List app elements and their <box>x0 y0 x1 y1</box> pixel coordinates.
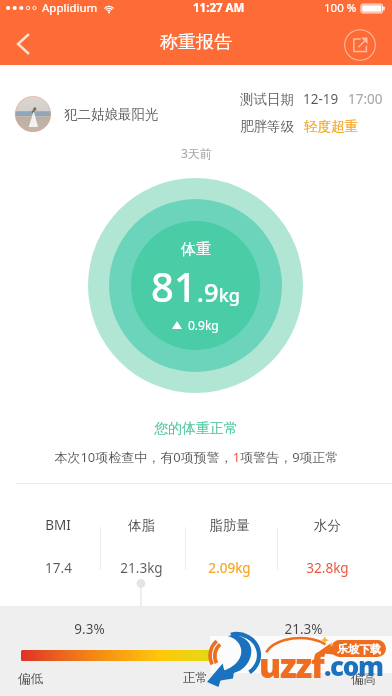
staticText: 测试日期 <box>240 91 294 108</box>
staticText: 轻度超重 <box>304 118 358 135</box>
staticText: 3天前 <box>181 145 212 161</box>
staticText: 32.8kg <box>306 559 349 577</box>
staticText: 11:27 AM <box>193 0 245 16</box>
staticText: BMI <box>45 516 71 534</box>
staticText: .com <box>324 648 383 683</box>
staticText: 体脂 <box>128 517 155 534</box>
staticText: 犯二姑娘最阳光 <box>64 106 159 123</box>
staticText: 100 % <box>324 0 357 16</box>
staticText: 9.3% <box>74 620 105 638</box>
staticText: 21.3% <box>284 620 323 638</box>
staticText: 偏高 <box>351 671 376 687</box>
staticText: 正常 <box>183 670 208 686</box>
staticText: 12-19 <box>303 90 339 108</box>
staticText: 体重 <box>181 240 211 259</box>
staticText: 偏低 <box>18 671 43 687</box>
staticText: 21.3kg <box>120 559 163 577</box>
staticText: 乐坡下载 <box>337 642 381 656</box>
button[interactable]: Back <box>4 22 42 65</box>
staticText: 水分 <box>314 517 341 534</box>
staticText: uzzf <box>259 643 324 688</box>
staticText: 本次10项检查中，有0项预警，1项警告，9项正常 <box>54 448 339 466</box>
staticText: 0.9kg <box>188 317 219 333</box>
button[interactable]: Share <box>344 29 376 61</box>
staticText: 17:00 <box>348 90 383 108</box>
staticText: 17.4 <box>45 559 72 577</box>
staticText: 正常 <box>351 671 376 687</box>
staticText: 2.09kg <box>208 559 251 577</box>
staticText: 脂肪量 <box>209 517 250 534</box>
staticText: Applidium <box>42 0 98 16</box>
staticText: 您的体重正常 <box>154 420 238 438</box>
staticText: 称重报告 <box>160 31 232 54</box>
staticText: 肥胖等级 <box>240 118 294 135</box>
staticText: 81.9kg <box>151 259 240 313</box>
